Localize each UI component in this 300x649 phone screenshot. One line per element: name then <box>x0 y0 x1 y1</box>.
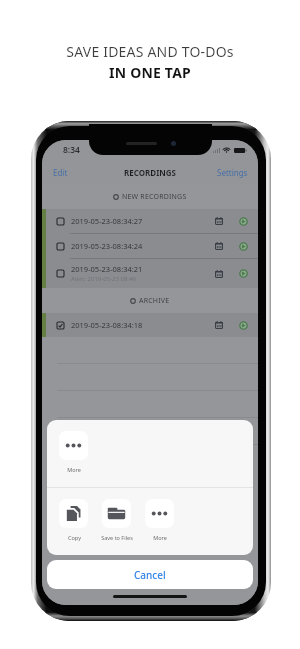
staticText: SAVE IDEAS AND TO-DOs <box>66 42 234 61</box>
button[interactable]: Copy <box>59 499 88 541</box>
button[interactable]: More <box>59 431 88 473</box>
staticText: Cancel <box>134 568 166 582</box>
staticText: 2019-05-23-08:34:21 <box>71 264 143 274</box>
button[interactable]: Play <box>237 215 250 228</box>
button[interactable]: Schedule <box>213 240 225 252</box>
staticText: Copy <box>68 534 81 541</box>
staticText: Alert: 2019-05-23 08:49 <box>71 275 136 283</box>
button[interactable]: Settings <box>213 164 252 181</box>
staticText: 2019-05-23-08:34:18 <box>71 320 143 330</box>
staticText: Save to Files <box>101 534 133 541</box>
button[interactable]: 2019-05-23-08:34:21 <box>46 259 258 288</box>
button[interactable]: Schedule <box>213 319 225 331</box>
staticText: 2019-05-23-08:34:24 <box>71 241 143 251</box>
button[interactable]: Save to Files <box>102 499 131 541</box>
staticText: Edit <box>53 167 68 178</box>
staticText: ARCHIVE <box>139 296 170 306</box>
staticText: 2019-05-23-08:34:27 <box>71 216 143 226</box>
staticText: Settings <box>217 167 248 178</box>
button[interactable]: Schedule <box>213 268 225 280</box>
button[interactable]: Play <box>237 240 250 253</box>
staticText: RECORDINGS <box>124 167 176 178</box>
button[interactable]: Play <box>237 267 250 280</box>
button[interactable]: 2019-05-23-08:34:24 <box>46 234 258 258</box>
button[interactable]: Cancel <box>47 560 253 589</box>
button[interactable]: 2019-05-23-08:34:18 <box>46 313 258 337</box>
button[interactable]: More <box>145 499 174 541</box>
staticText: IN ONE TAP <box>109 63 191 82</box>
button[interactable]: Schedule <box>213 215 225 227</box>
button[interactable]: 2019-05-23-08:34:27 <box>46 209 258 233</box>
button[interactable]: Play <box>237 319 250 332</box>
staticText: More <box>153 534 167 541</box>
staticText: More <box>67 466 81 473</box>
button[interactable]: Edit <box>49 164 72 181</box>
staticText: NEW RECORDINGS <box>122 192 187 202</box>
staticText: 8:34 <box>63 144 80 156</box>
